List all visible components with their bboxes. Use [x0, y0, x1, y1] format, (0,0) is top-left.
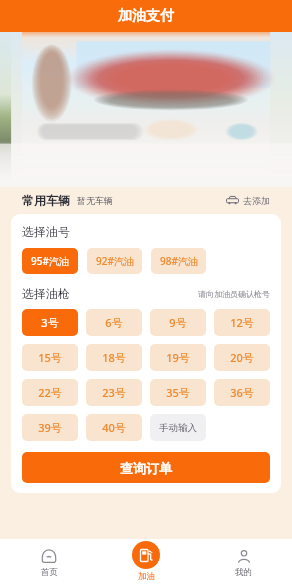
button[interactable]: 我的 [195, 539, 292, 587]
button[interactable]: 35号 [150, 379, 206, 406]
other: Add vehicle [226, 196, 239, 205]
staticText: 9号 [169, 315, 187, 330]
staticText: 首页 [41, 567, 58, 578]
staticText: 选择油号 [22, 224, 70, 239]
other: 我的 [236, 548, 252, 564]
button[interactable]: 6号 [86, 309, 142, 336]
button[interactable]: 19号 [150, 344, 206, 371]
staticText: 6号 [105, 315, 123, 330]
button[interactable]: 查询订单 [22, 452, 270, 483]
button[interactable]: 23号 [86, 379, 142, 406]
staticText: 39号 [38, 420, 62, 435]
button[interactable]: 39号 [22, 414, 78, 441]
button[interactable]: 95#汽油 [22, 248, 78, 274]
button[interactable]: 22号 [22, 379, 78, 406]
staticText: 18号 [102, 350, 126, 365]
staticText: 20号 [230, 350, 254, 365]
staticText: 92#汽油 [96, 254, 134, 268]
staticText: 12号 [230, 315, 254, 330]
button[interactable]: 92#汽油 [87, 248, 142, 274]
staticText: 19号 [166, 350, 190, 365]
other: 加油 [132, 541, 160, 569]
staticText: 加油支付 [118, 7, 174, 25]
staticText: 暂无车辆 [77, 195, 113, 206]
staticText: 36号 [230, 385, 254, 400]
staticText: 查询订单 [120, 460, 172, 476]
staticText: 去添加 [243, 195, 270, 206]
button[interactable]: 20号 [214, 344, 270, 371]
staticText: 40号 [102, 420, 126, 435]
button[interactable]: 40号 [86, 414, 142, 441]
button[interactable]: 15号 [22, 344, 78, 371]
staticText: 我的 [235, 567, 252, 578]
staticText: 请向加油员确认枪号 [198, 289, 270, 299]
staticText: 加油 [138, 571, 155, 582]
staticText: 常用车辆 [22, 193, 70, 208]
button[interactable]: 36号 [214, 379, 270, 406]
staticText: 3号 [41, 315, 59, 330]
other: 首页 [41, 548, 57, 564]
staticText: 手动输入 [159, 422, 197, 434]
button[interactable]: 12号 [214, 309, 270, 336]
button[interactable]: 手动输入 [150, 414, 206, 441]
staticText: 95#汽油 [31, 254, 69, 268]
staticText: 98#汽油 [160, 254, 198, 268]
staticText: 35号 [166, 385, 190, 400]
button[interactable]: 首页 [0, 539, 98, 587]
staticText: 23号 [102, 385, 126, 400]
button[interactable]: 9号 [150, 309, 206, 336]
staticText: 15号 [38, 350, 62, 365]
button[interactable]: 3号 [22, 309, 78, 336]
button[interactable]: 常用车辆 [11, 187, 281, 214]
button[interactable]: 加油 [132, 541, 160, 582]
button[interactable]: 98#汽油 [151, 248, 206, 274]
button[interactable]: 18号 [86, 344, 142, 371]
staticText: 选择油枪 [22, 286, 70, 301]
staticText: 22号 [38, 385, 62, 400]
